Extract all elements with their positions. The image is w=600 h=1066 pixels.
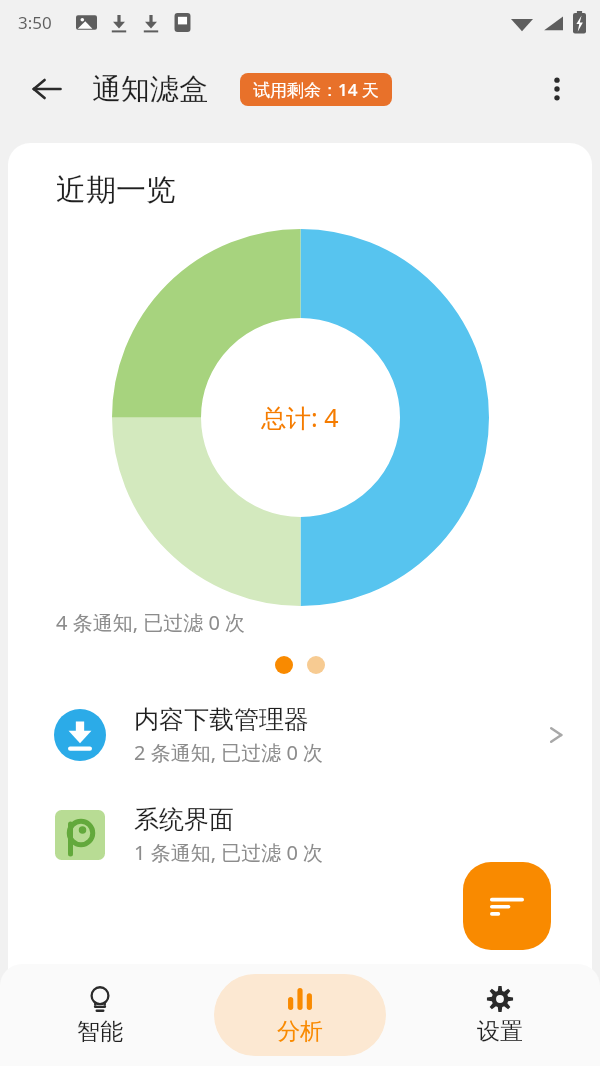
- staticText: 近期一览: [56, 171, 176, 209]
- button[interactable]: 系统界面: [8, 796, 592, 874]
- staticText: 试用剩余：14 天: [253, 78, 379, 101]
- staticText: 2 条通知, 已过滤 0 次: [134, 739, 324, 766]
- button[interactable]: 分析: [214, 974, 386, 1056]
- button[interactable]: Back: [20, 62, 74, 116]
- staticText: 3:50: [18, 11, 52, 34]
- staticText: 通知滤盒: [92, 71, 208, 108]
- button[interactable]: 试用剩余：14 天: [240, 73, 392, 106]
- staticText: 分析: [277, 1017, 323, 1046]
- staticText: 智能: [77, 1017, 123, 1046]
- staticText: 设置: [477, 1017, 523, 1046]
- button[interactable]: 智能: [25, 974, 175, 1056]
- button[interactable]: More options: [532, 64, 582, 114]
- button[interactable]: Filter rules: [463, 862, 551, 950]
- staticText: 1 条通知, 已过滤 0 次: [134, 839, 324, 866]
- staticText: 内容下载管理器: [134, 704, 309, 735]
- staticText: 4 条通知, 已过滤 0 次: [56, 609, 246, 636]
- staticText: 总计: 4: [261, 400, 339, 434]
- staticText: 系统界面: [134, 804, 234, 835]
- button[interactable]: 设置: [425, 974, 575, 1056]
- button[interactable]: 内容下载管理器: [8, 696, 592, 774]
